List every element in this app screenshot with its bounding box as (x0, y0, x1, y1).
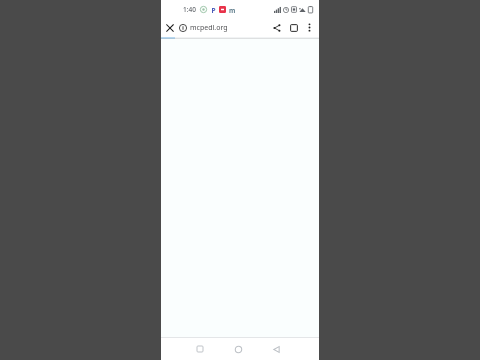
button[interactable]: mcpedl.org (179, 18, 268, 37)
button[interactable]: Recent apps (189, 338, 211, 360)
button[interactable]: Share (268, 18, 285, 37)
staticText: m (229, 6, 235, 13)
button[interactable]: Bookmark (285, 18, 302, 37)
button[interactable]: Home (227, 338, 249, 360)
staticText: P (211, 6, 216, 13)
button[interactable]: Back (265, 338, 287, 360)
staticText: mcpedl.org (190, 23, 228, 33)
button[interactable]: More options (302, 18, 317, 37)
staticText: 1:40 (183, 5, 196, 14)
button[interactable]: Close (161, 18, 179, 37)
